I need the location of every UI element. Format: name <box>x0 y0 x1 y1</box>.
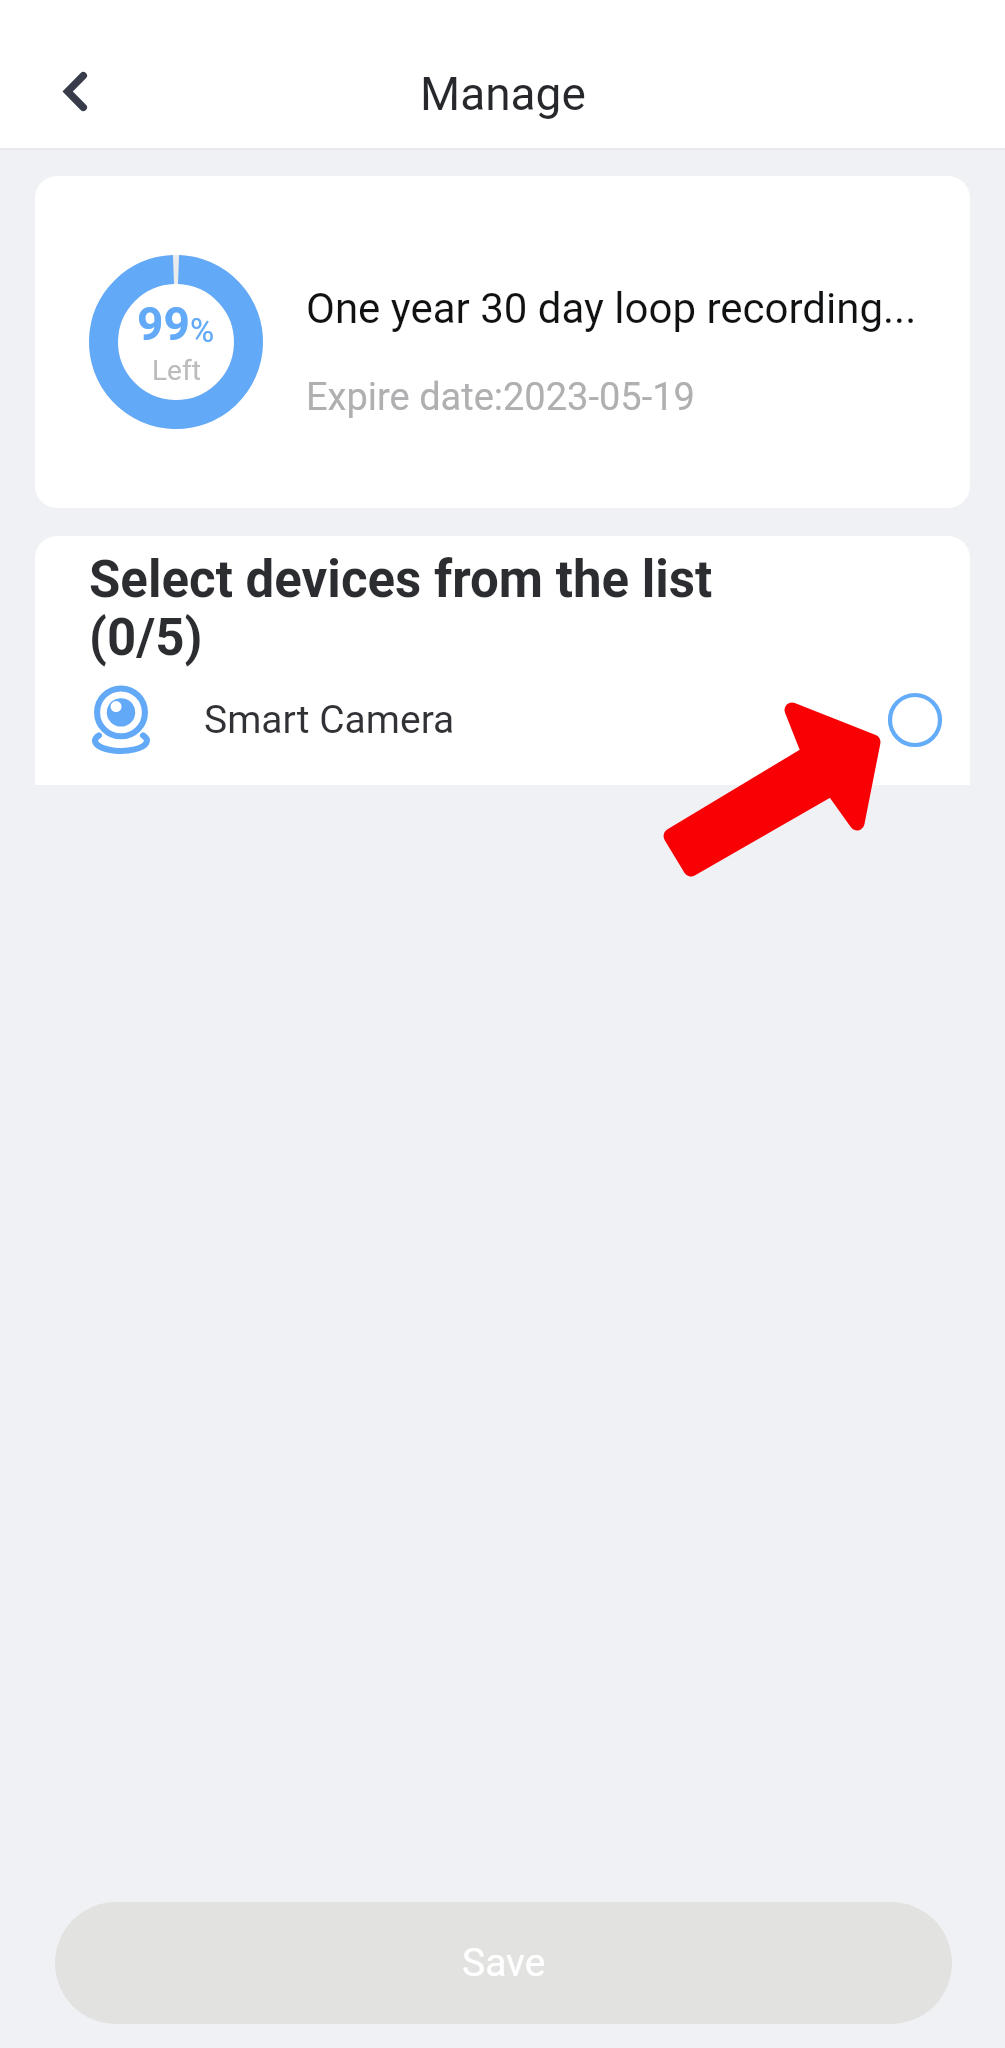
staticText: Expire date:2023-05-19 <box>306 375 695 420</box>
staticText: Save <box>462 1940 546 1986</box>
staticText: Left <box>152 354 201 387</box>
button[interactable]: Save <box>55 1902 952 2024</box>
staticText: 99 <box>137 297 190 351</box>
staticText: Select devices from the list (0/5) <box>89 550 770 667</box>
staticText: Smart Camera <box>204 697 455 743</box>
button[interactable]: 99 <box>35 176 970 508</box>
button[interactable]: Smart Camera <box>35 670 970 770</box>
staticText: % <box>190 311 215 350</box>
button[interactable]: Back <box>30 46 120 136</box>
staticText: One year 30 day loop recording... <box>306 284 917 333</box>
staticText: Manage <box>420 67 586 121</box>
